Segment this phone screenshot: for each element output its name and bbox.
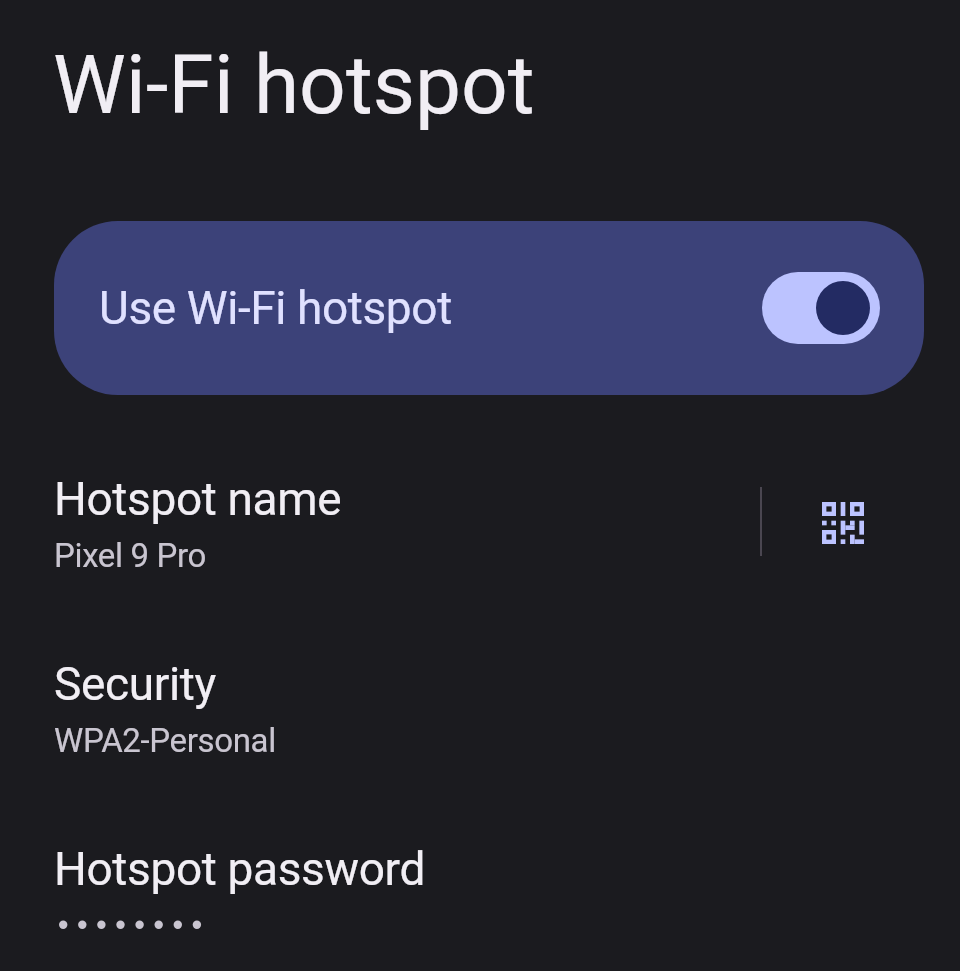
staticText: Hotspot password bbox=[54, 842, 426, 896]
staticText: Security bbox=[54, 657, 216, 711]
staticText: Hotspot name bbox=[54, 472, 342, 526]
staticText: WPA2-Personal bbox=[54, 721, 276, 760]
staticText: Pixel 9 Pro bbox=[54, 536, 206, 575]
staticText: Wi-Fi hotspot bbox=[53, 37, 535, 133]
button[interactable]: Security bbox=[0, 615, 960, 775]
button[interactable]: Hotspot name bbox=[0, 430, 960, 590]
button[interactable]: Use Wi-Fi hotspot toggle, on bbox=[762, 272, 880, 344]
staticText: Use Wi-Fi hotspot bbox=[99, 281, 452, 335]
button[interactable]: Hotspot password bbox=[0, 800, 960, 960]
button[interactable]: Share hotspot QR code bbox=[790, 470, 896, 576]
button[interactable]: Use Wi-Fi hotspot bbox=[54, 221, 924, 395]
